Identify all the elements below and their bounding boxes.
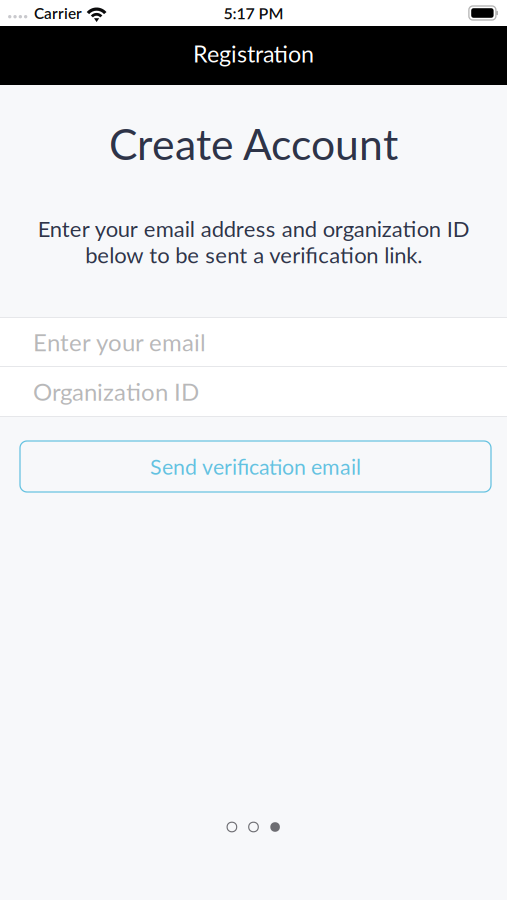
staticText: Enter your email <box>33 328 206 356</box>
staticText: Organization ID <box>33 377 199 406</box>
staticText: 5:17 PM <box>223 3 283 23</box>
button[interactable]: Send verification email <box>20 441 491 492</box>
staticText: Send verification email <box>150 454 361 479</box>
button[interactable]: Enter your email <box>0 318 507 366</box>
staticText: Registration <box>193 39 314 67</box>
staticText: Carrier <box>34 4 82 22</box>
button[interactable]: Organization ID <box>0 367 507 416</box>
staticText: Enter your email address and organizatio… <box>37 215 469 268</box>
staticText: Create Account <box>109 118 398 169</box>
